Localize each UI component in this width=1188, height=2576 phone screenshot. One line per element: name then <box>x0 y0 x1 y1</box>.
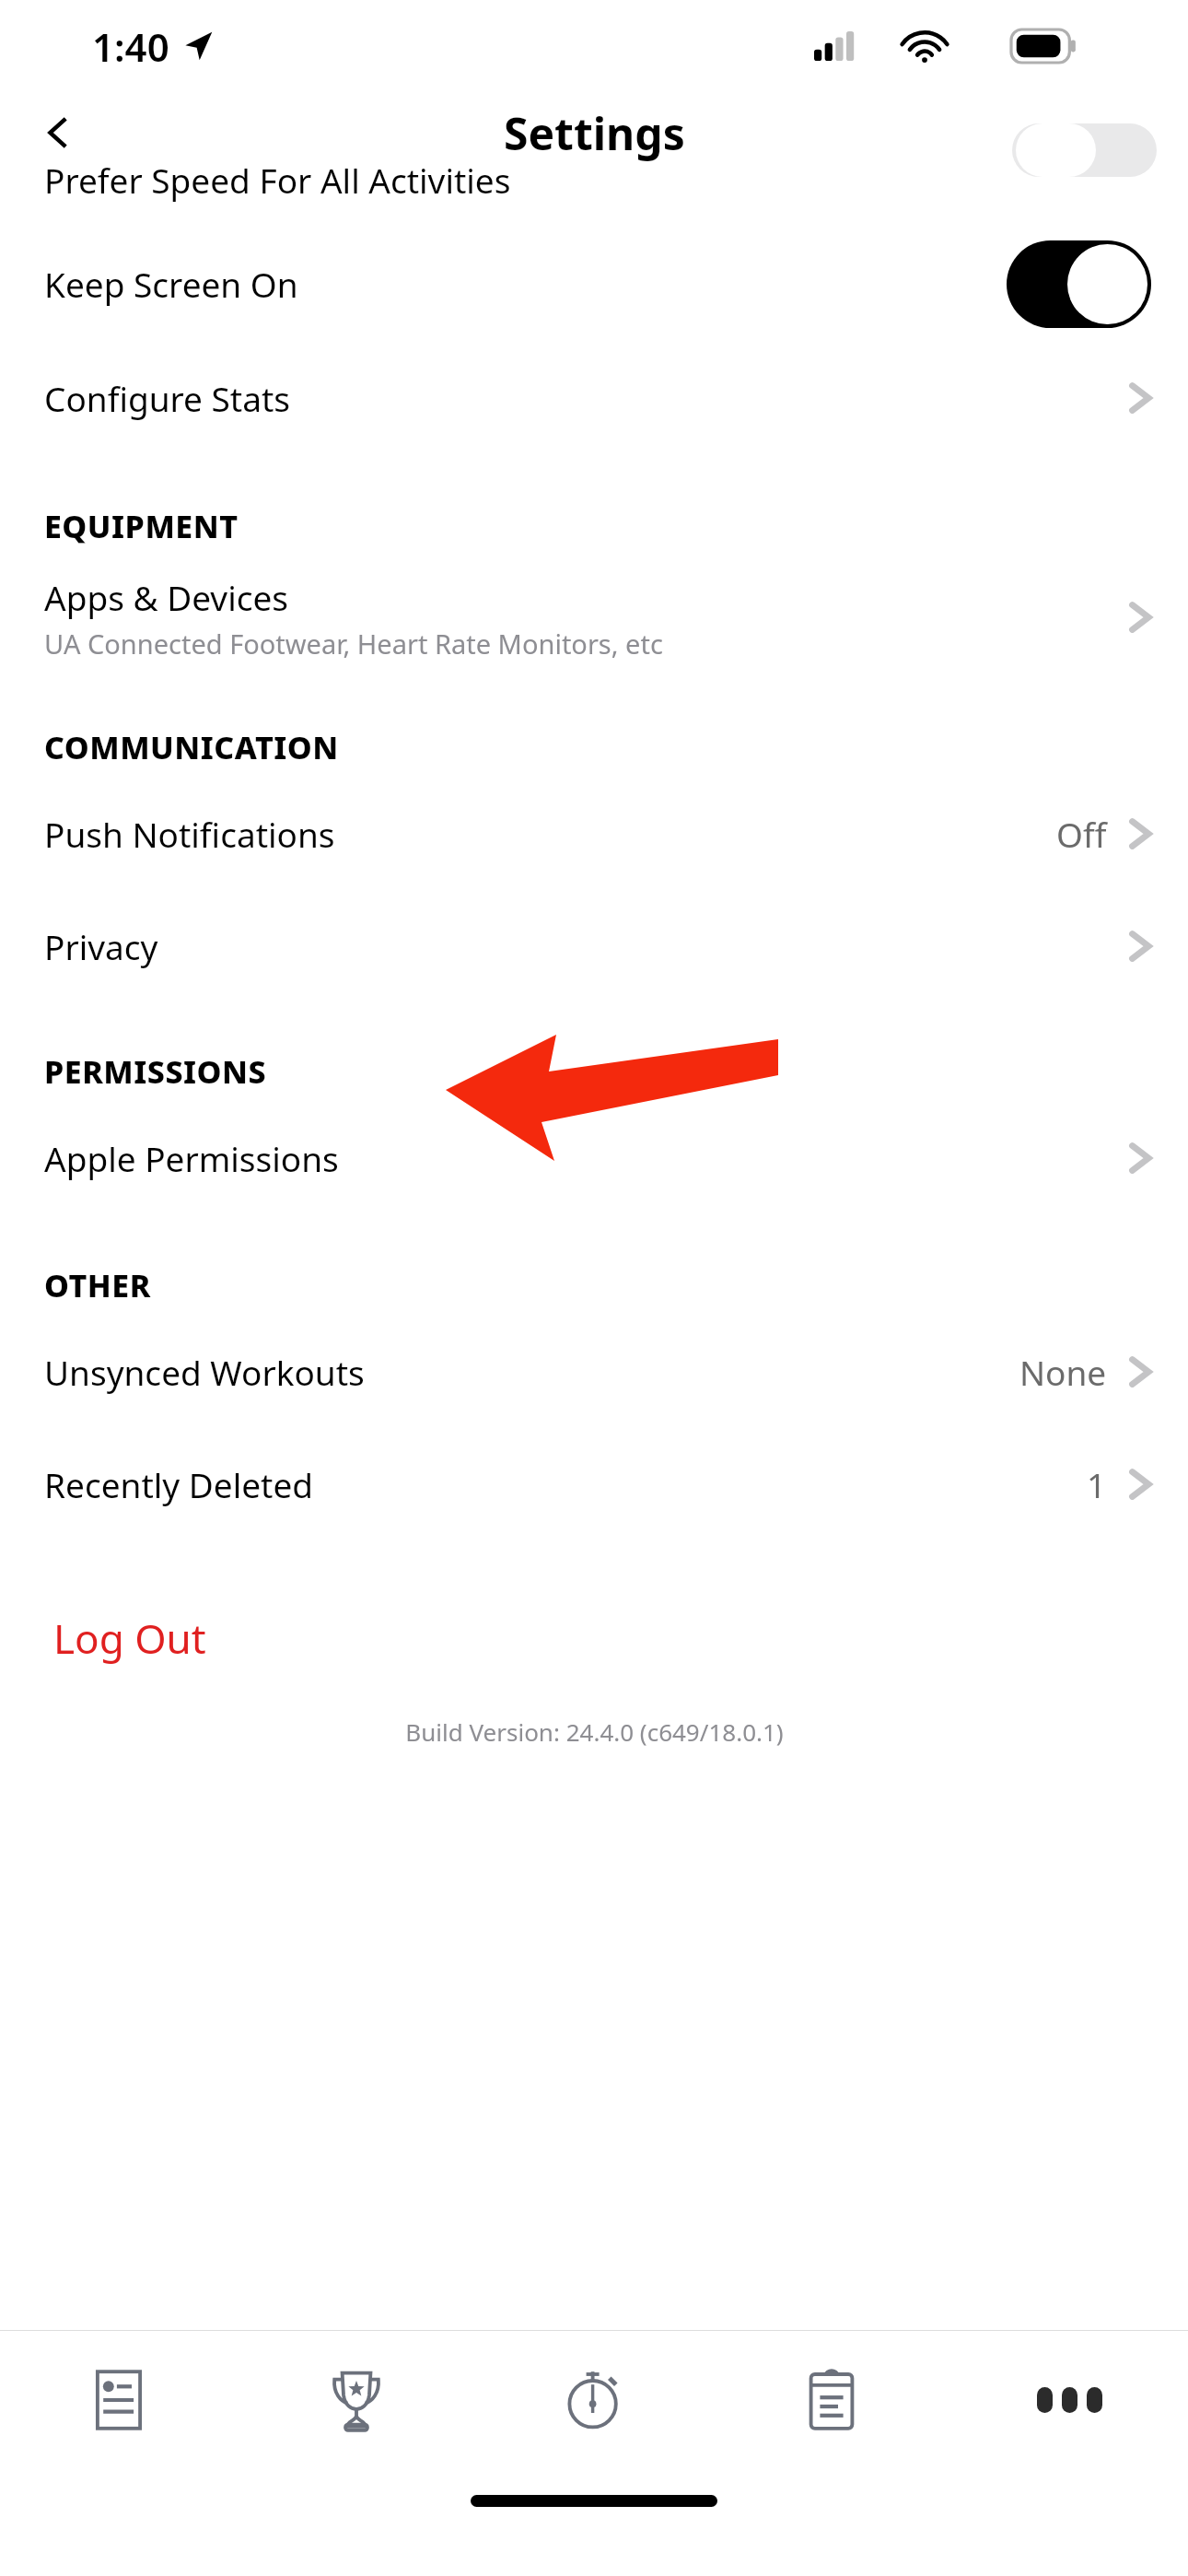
button[interactable]: Challenges <box>238 2331 475 2469</box>
button[interactable]: Recently Deleted <box>0 1428 1188 1540</box>
button[interactable]: More <box>950 2331 1188 2469</box>
button[interactable]: Training Plans <box>713 2331 950 2469</box>
staticText: Push Notifications <box>44 811 335 857</box>
staticText: UA Connected Footwear, Heart Rate Monito… <box>44 626 663 662</box>
staticText: Build Version: 24.4.0 (c649/18.0.1) <box>405 1715 784 1748</box>
staticText: COMMUNICATION <box>44 726 339 768</box>
button[interactable]: Unsynced Workouts <box>0 1316 1188 1428</box>
staticText: Privacy <box>44 923 158 969</box>
staticText: Configure Stats <box>44 375 291 421</box>
button[interactable]: Apps & Devices <box>0 556 1188 678</box>
button[interactable]: Apple Permissions <box>0 1102 1188 1214</box>
button[interactable]: Toggle on <box>1007 240 1151 328</box>
staticText: Keep Screen On <box>44 261 298 307</box>
staticText: 1 <box>1087 1461 1107 1507</box>
button[interactable]: Log Out <box>53 1603 206 1673</box>
button[interactable]: Record Workout <box>475 2331 713 2469</box>
button[interactable]: Keep Screen On <box>0 227 1188 341</box>
staticText: Log Out <box>53 1610 206 1666</box>
button[interactable]: Feed <box>0 2331 238 2469</box>
staticText: Apps & Devices <box>44 574 289 620</box>
staticText: 1:40 <box>92 20 169 73</box>
staticText: EQUIPMENT <box>44 505 239 547</box>
staticText: Unsynced Workouts <box>44 1349 365 1395</box>
staticText: Settings <box>504 103 685 163</box>
button[interactable]: Prefer Speed For All Activities <box>0 173 1188 227</box>
staticText: Apple Permissions <box>44 1135 339 1181</box>
button[interactable]: Toggle off <box>1012 123 1157 177</box>
button[interactable]: Back <box>18 92 99 173</box>
staticText: OTHER <box>44 1264 151 1306</box>
staticText: None <box>1019 1349 1107 1395</box>
staticText: Prefer Speed For All Activities <box>44 157 511 203</box>
staticText: Off <box>1056 811 1107 857</box>
button[interactable]: Configure Stats <box>0 341 1188 455</box>
button[interactable]: Push Notifications <box>0 778 1188 890</box>
staticText: Recently Deleted <box>44 1461 314 1507</box>
staticText: PERMISSIONS <box>44 1050 267 1093</box>
button[interactable]: Privacy <box>0 890 1188 1002</box>
